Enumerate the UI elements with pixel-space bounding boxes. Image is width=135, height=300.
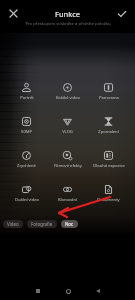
button[interactable]: VLOG [47,107,88,141]
button[interactable]: Filmové efekty [47,141,88,175]
staticText: Zrychlené [17,163,36,169]
staticText: Krátké video [56,95,80,101]
button[interactable]: Home [59,282,77,300]
staticText: Filmové efekty [54,163,82,169]
button[interactable]: Close [4,4,23,23]
button[interactable]: 50MP [6,107,47,141]
button[interactable]: Noc [61,220,78,228]
button[interactable]: Klonování [47,175,88,209]
staticText: Panorama [99,95,119,101]
staticText: Dokumenty [97,197,120,203]
button[interactable]: Video [3,220,23,228]
staticText: Funkce [55,9,80,19]
staticText: Portrét [20,95,34,101]
button[interactable]: Recents [29,282,47,300]
button[interactable]: Fotografie [27,220,57,228]
button[interactable]: Panorama [88,73,129,107]
staticText: Dlouhá expozice [93,163,125,169]
staticText: Noc [65,221,74,227]
staticText: Fotografie [31,221,53,227]
staticText: Klonování [58,197,77,203]
button[interactable]: Back [89,282,107,300]
button[interactable]: Zpomalení [88,107,129,141]
button[interactable]: Zrychlené [6,141,47,175]
button[interactable]: Krátké video [47,73,88,107]
button[interactable]: Dokumenty [88,175,129,209]
staticText: Video [7,221,19,227]
staticText: Duální video [15,197,39,203]
staticText: 50MP [21,129,32,135]
button[interactable]: Dlouhá expozice [88,141,129,175]
staticText: Zpomalení [98,129,119,135]
button[interactable]: Duální video [6,175,47,209]
button[interactable]: Confirm [112,4,131,23]
staticText: Pro přeskupení stiskněte a přidržte polo… [25,21,111,27]
button[interactable]: Portrét [6,73,47,107]
staticText: VLOG [62,129,73,135]
